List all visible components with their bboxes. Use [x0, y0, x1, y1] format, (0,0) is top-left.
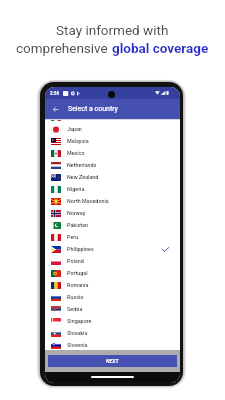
staticText: Slovenia — [67, 342, 88, 348]
staticText: Select a country — [68, 105, 118, 113]
staticText: 2:36 — [50, 91, 60, 96]
staticText: Russia — [67, 294, 84, 300]
staticText: Portugal — [67, 270, 88, 276]
staticText: North Macedonia — [67, 198, 109, 204]
staticText: Netherlands — [67, 162, 97, 168]
button[interactable]: Japan — [45, 123, 180, 135]
staticText: Mexico — [67, 150, 85, 156]
button[interactable]: Malaysia — [45, 135, 180, 147]
staticText: Malaysia — [67, 138, 89, 144]
staticText: Poland — [67, 258, 84, 264]
button[interactable]: NEXT — [48, 355, 177, 367]
button[interactable]: Nigeria — [45, 183, 180, 195]
staticText: Stay informed with — [56, 22, 169, 38]
button[interactable]: Back — [50, 104, 61, 115]
button[interactable]: Slovenia — [45, 339, 180, 350]
staticText: Romania — [67, 282, 89, 288]
button[interactable]: Russia — [45, 291, 180, 303]
staticText: Nigeria — [67, 186, 85, 192]
staticText: Norway — [67, 210, 86, 216]
button[interactable]: Peru — [45, 231, 180, 243]
staticText: Philippines — [67, 246, 94, 252]
button[interactable]: Slovakia — [45, 327, 180, 339]
staticText: Peru — [67, 234, 79, 240]
button[interactable]: Mexico — [45, 147, 180, 159]
staticText: Pakistan — [67, 222, 88, 228]
staticText: Serbia — [67, 306, 83, 312]
button[interactable]: Singapore — [45, 315, 180, 327]
staticText: New Zealand — [67, 174, 99, 180]
staticText: Slovakia — [67, 330, 88, 336]
button[interactable]: Pakistan — [45, 219, 180, 231]
staticText: global coverage — [112, 40, 209, 56]
button[interactable]: Philippines — [45, 243, 180, 255]
staticText: Japan — [67, 126, 82, 132]
staticText: comprehensive — [16, 40, 112, 56]
staticText: NEXT — [106, 358, 119, 364]
button[interactable]: Netherlands — [45, 159, 180, 171]
button[interactable]: Romania — [45, 279, 180, 291]
button[interactable]: Italy — [45, 120, 180, 123]
button[interactable]: Poland — [45, 255, 180, 267]
button[interactable]: Portugal — [45, 267, 180, 279]
button[interactable]: Serbia — [45, 303, 180, 315]
button[interactable]: North Macedonia — [45, 195, 180, 207]
button[interactable]: New Zealand — [45, 171, 180, 183]
staticText: Singapore — [67, 318, 92, 324]
button[interactable]: Norway — [45, 207, 180, 219]
